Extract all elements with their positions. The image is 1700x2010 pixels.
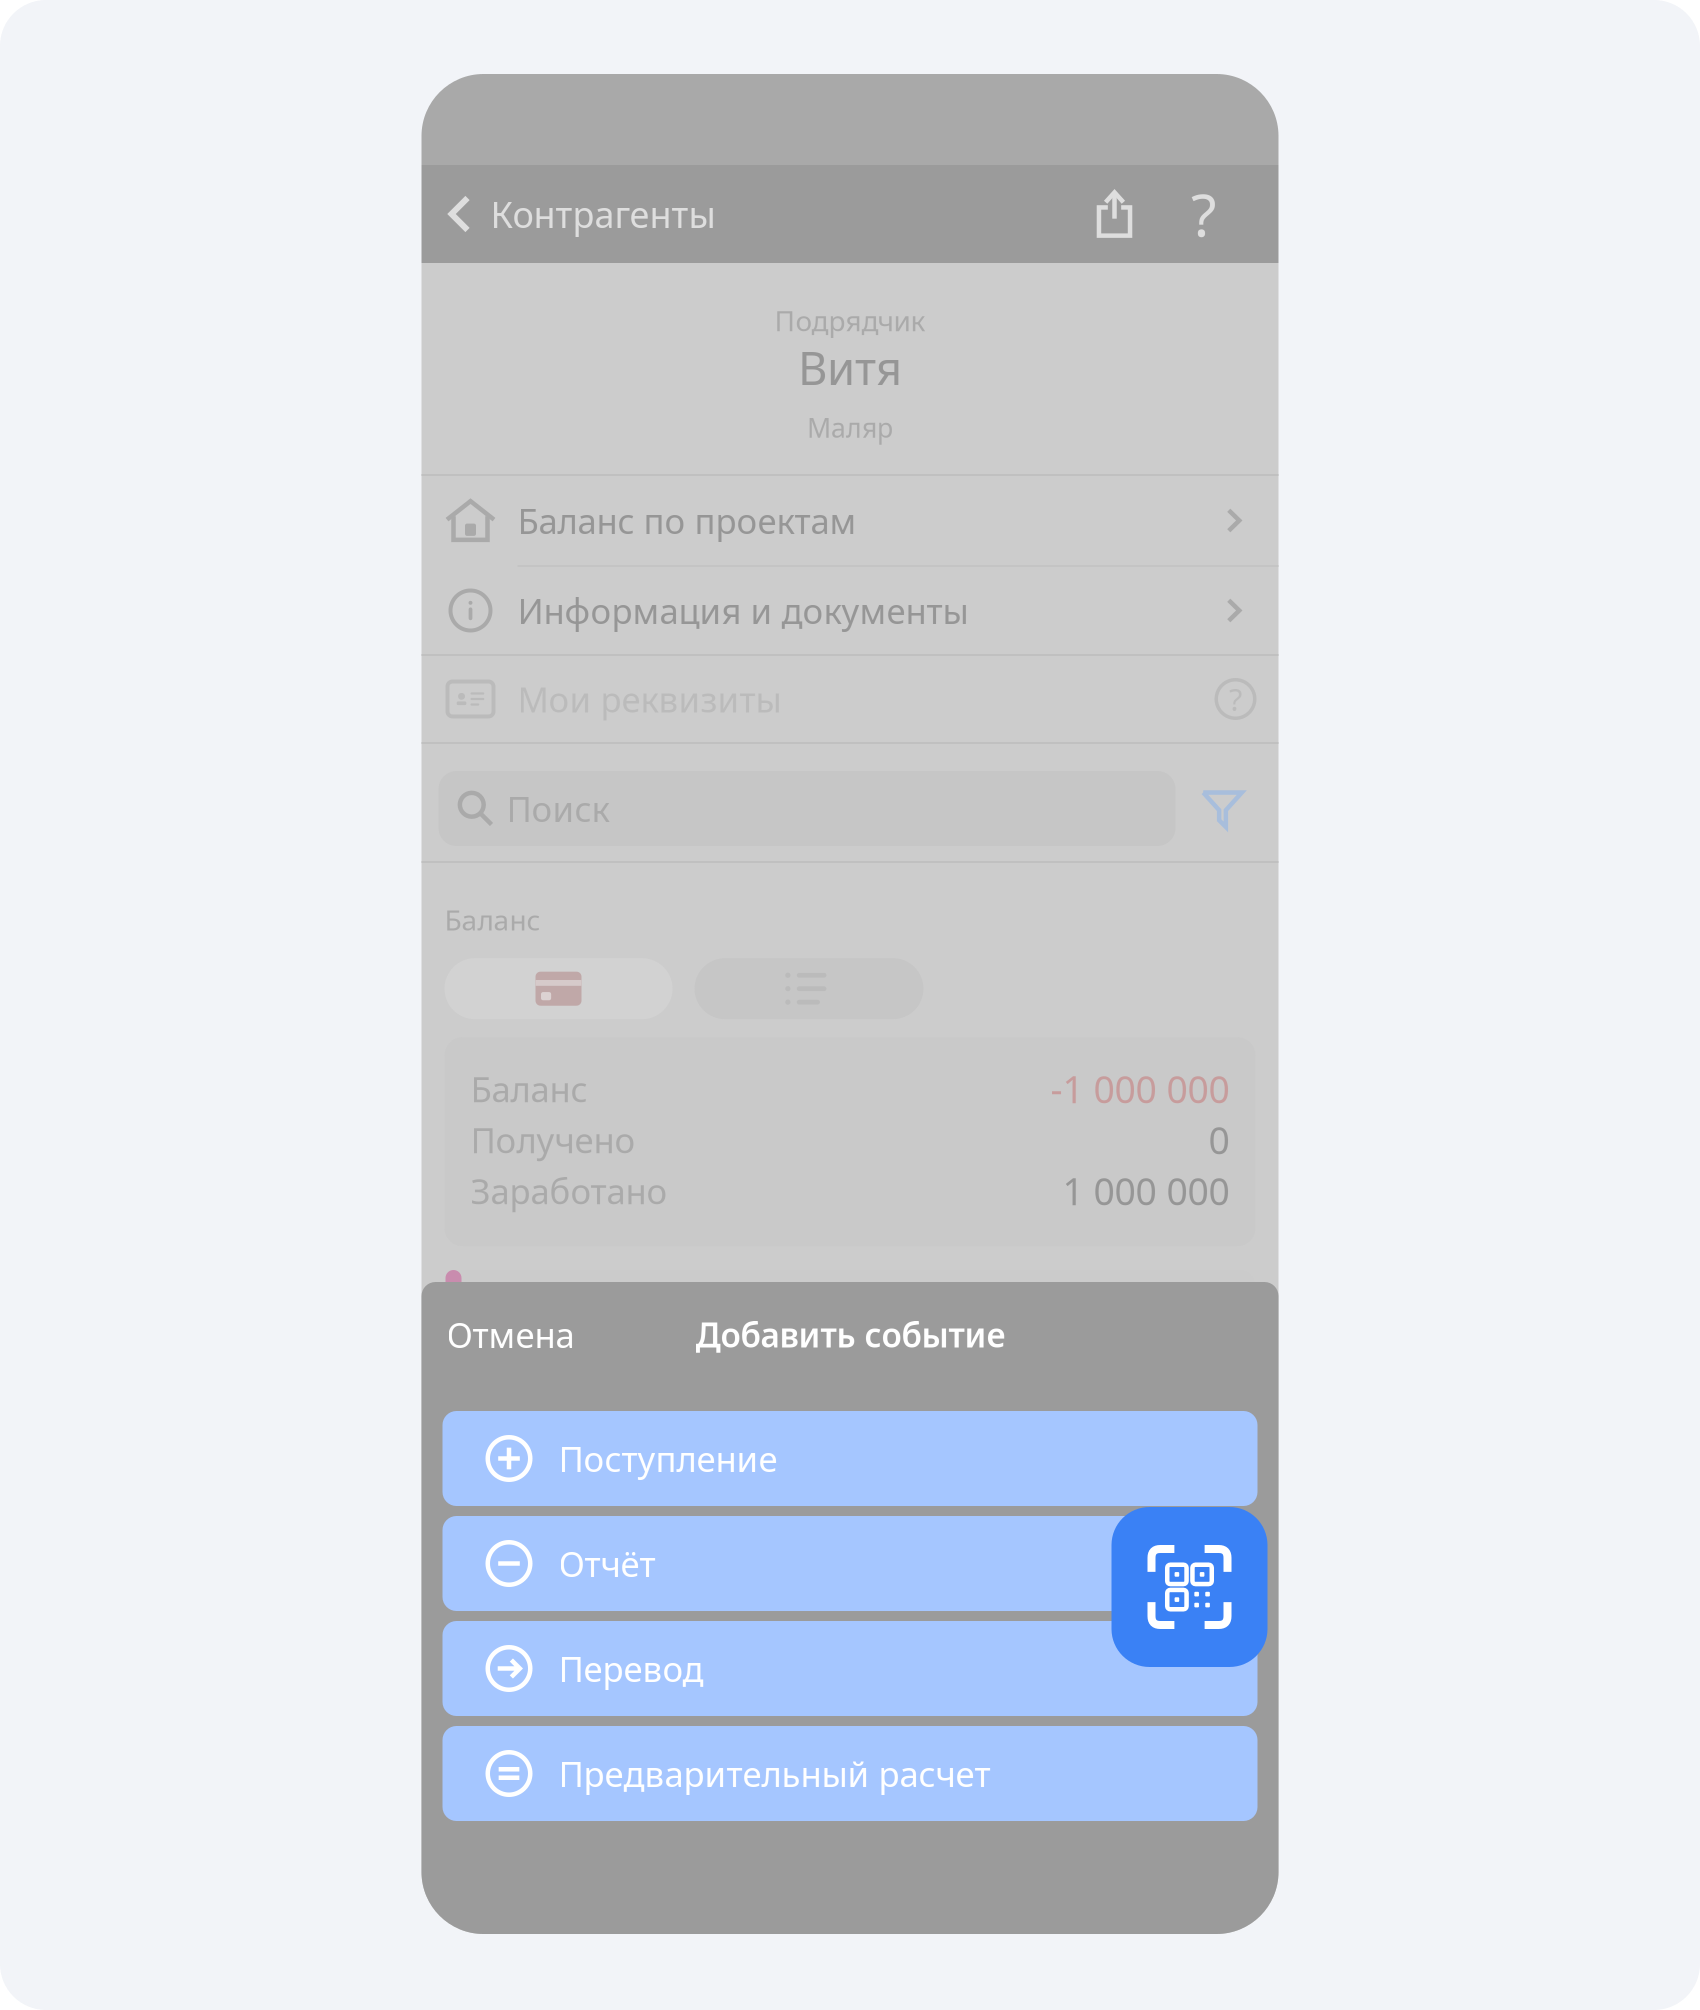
staticText: 0 — [1208, 1115, 1229, 1164]
button[interactable]: Поделиться — [1064, 165, 1164, 263]
staticText: Баланс по проектам — [517, 497, 856, 543]
staticText: Добавить событие — [695, 1312, 1005, 1357]
staticText: Витя — [798, 337, 902, 398]
button[interactable]: Отмена — [421, 1286, 599, 1382]
button[interactable]: Поступление — [442, 1411, 1257, 1506]
staticText: 1 000 000 — [1062, 1166, 1229, 1215]
staticText: Отмена — [446, 1311, 574, 1357]
staticText: -1 000 000 — [1050, 1064, 1229, 1113]
button[interactable]: Информация и документы — [421, 567, 1278, 654]
staticText: Поступление — [558, 1435, 777, 1481]
button[interactable]: Сканировать QR-код — [1111, 1507, 1267, 1667]
staticText: Баланс — [444, 901, 540, 938]
staticText: Отчёт — [558, 1540, 655, 1586]
staticText: Предварительный расчет — [558, 1750, 990, 1796]
button[interactable]: Фильтр — [1194, 775, 1250, 841]
staticText: Заработано — [470, 1168, 667, 1214]
staticText: Контрагенты — [490, 190, 715, 238]
button[interactable]: Карта — [444, 958, 672, 1019]
button[interactable]: Мои реквизиты — [421, 656, 1278, 742]
button[interactable]: Справка — [1164, 165, 1242, 263]
staticText: ? — [1191, 175, 1216, 253]
staticText: Получено — [470, 1117, 635, 1163]
button[interactable]: Перевод — [442, 1621, 1257, 1716]
staticText: Подрядчик — [774, 302, 925, 339]
button[interactable]: Контрагенты — [421, 165, 737, 263]
staticText: Информация и документы — [517, 587, 968, 633]
button[interactable]: Отчёт — [442, 1516, 1257, 1611]
button[interactable]: Предварительный расчет — [442, 1726, 1257, 1821]
button[interactable]: Баланс по проектам — [421, 476, 1278, 565]
staticText: Мои реквизиты — [517, 676, 781, 722]
staticText: Поиск — [506, 785, 609, 831]
staticText: ? — [1229, 679, 1242, 719]
staticText: Баланс — [470, 1066, 587, 1112]
staticText: Маляр — [807, 410, 893, 445]
staticText: Перевод — [558, 1645, 703, 1691]
